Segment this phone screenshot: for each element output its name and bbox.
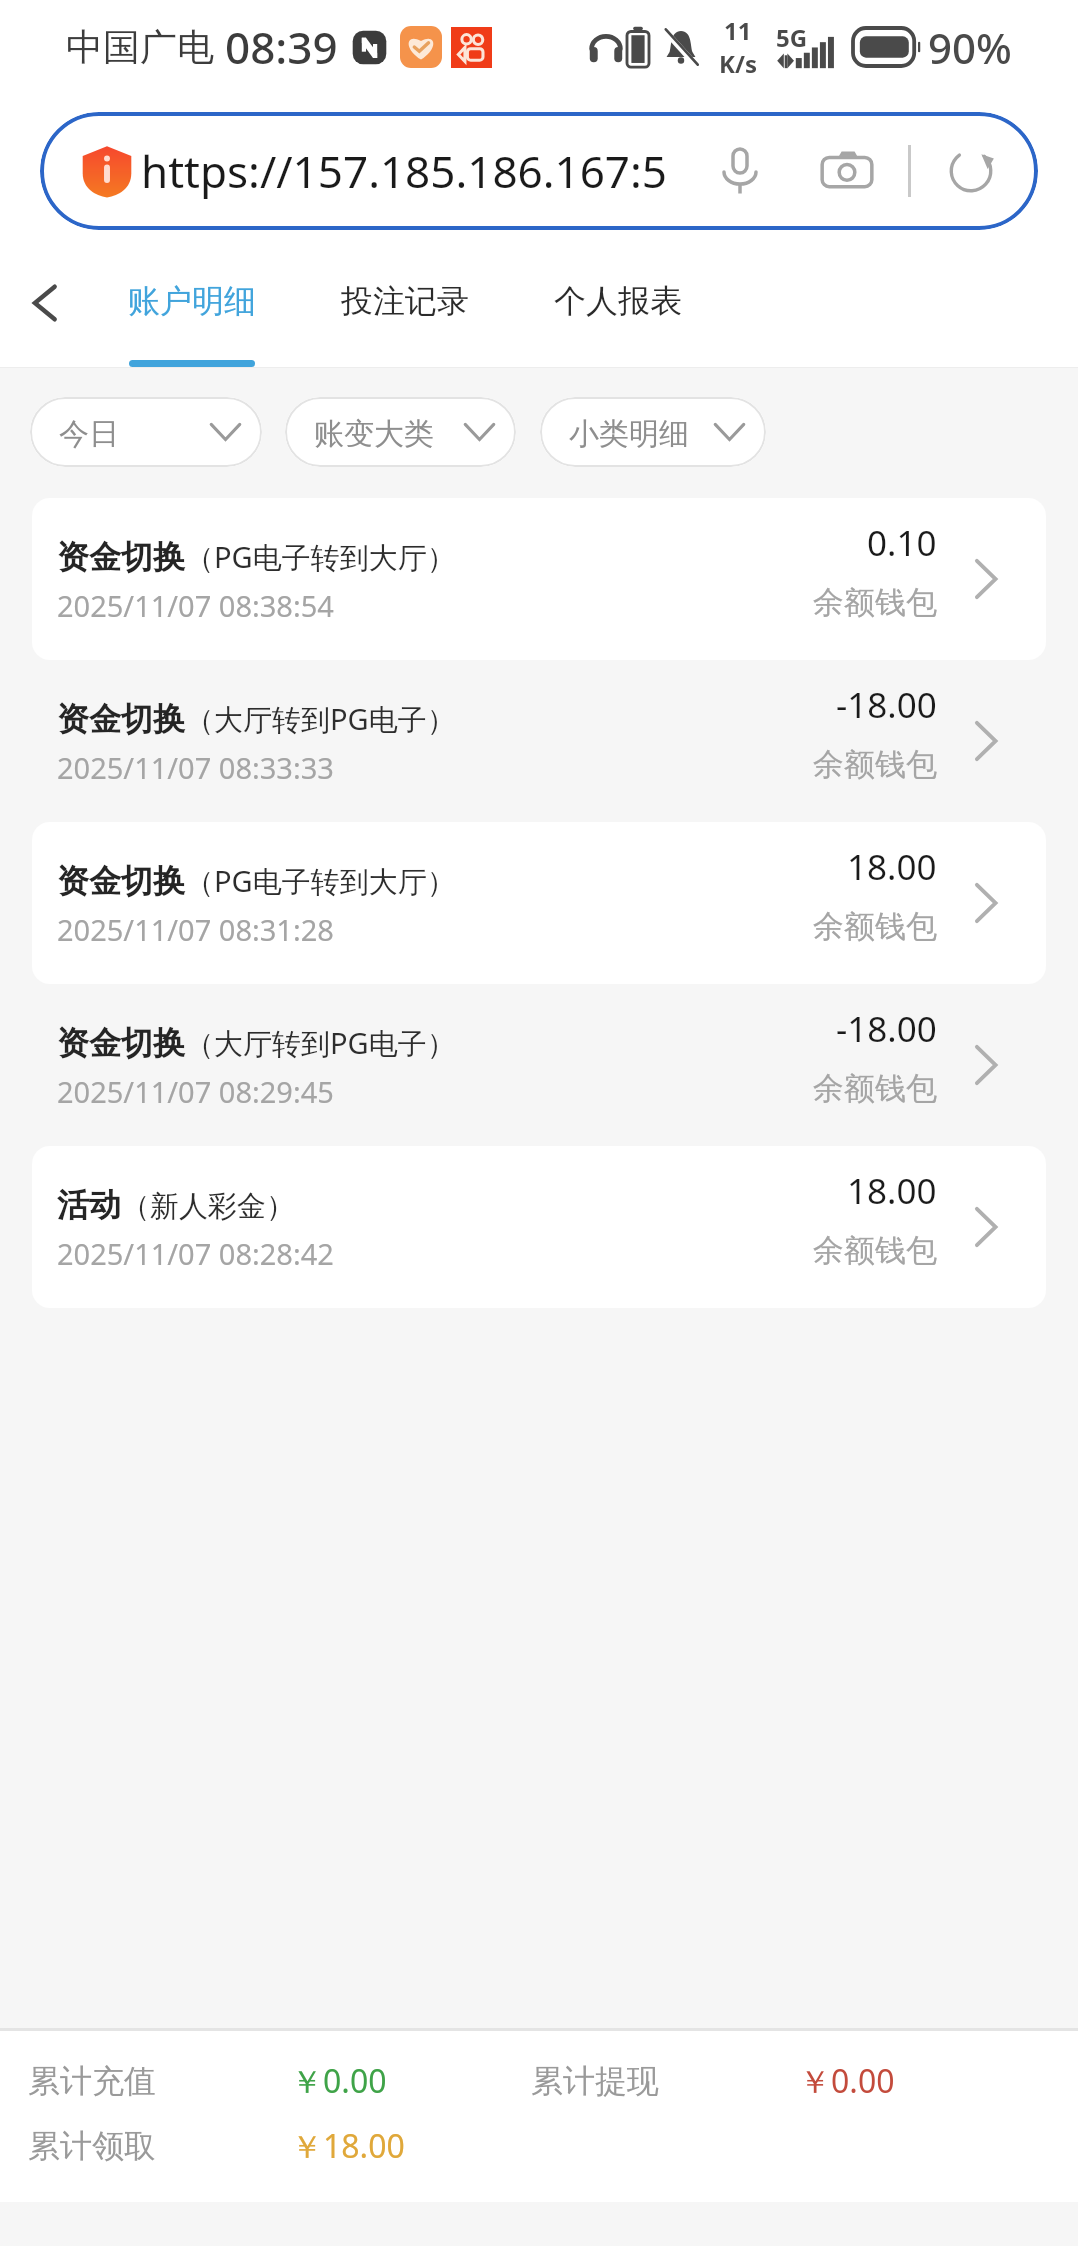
staticText: 余额钱包: [813, 1231, 937, 1270]
staticText: ￥0.00: [291, 2059, 387, 2103]
staticText: 2025/11/07 08:28:42: [57, 1234, 334, 1273]
button[interactable]: Voice search: [709, 140, 771, 202]
staticText: 2025/11/07 08:29:45: [57, 1072, 334, 1111]
staticText: 累计领取: [28, 2126, 156, 2166]
staticText: 资金切换: [57, 699, 185, 739]
button[interactable]: https://157.185.186.167:5: [40, 112, 1038, 230]
staticText: -18.00: [836, 1005, 937, 1053]
button[interactable]: 今日: [30, 397, 262, 467]
staticText: 余额钱包: [813, 1069, 937, 1108]
button[interactable]: 账户明细: [128, 248, 256, 367]
staticText: 2025/11/07 08:33:33: [57, 748, 334, 787]
staticText: （PG电子转到大厅）: [185, 861, 456, 901]
staticText: 账变大类: [314, 415, 434, 453]
staticText: 累计提现: [531, 2061, 659, 2101]
staticText: 5G: [776, 21, 808, 54]
button[interactable]: 资金切换: [32, 660, 1046, 822]
staticText: 中国广电: [66, 24, 214, 71]
button[interactable]: 活动: [32, 1146, 1046, 1308]
staticText: K/s: [719, 47, 757, 80]
staticText: 18.00: [847, 1167, 937, 1215]
staticText: 资金切换: [57, 537, 185, 577]
staticText: 0.10: [867, 519, 937, 567]
staticText: 余额钱包: [813, 745, 937, 784]
staticText: 活动: [57, 1185, 121, 1225]
button[interactable]: 资金切换: [32, 822, 1046, 984]
staticText: （PG电子转到大厅）: [185, 537, 456, 577]
staticText: ￥18.00: [291, 2124, 405, 2168]
staticText: 11: [724, 14, 752, 47]
button[interactable]: 资金切换: [32, 498, 1046, 660]
staticText: 08:39: [225, 17, 338, 77]
staticText: 投注记录: [341, 281, 469, 321]
staticText: 个人报表: [554, 281, 682, 321]
staticText: -18.00: [836, 681, 937, 729]
button[interactable]: 账变大类: [285, 397, 516, 467]
button[interactable]: Camera search: [816, 140, 878, 202]
button[interactable]: 小类明细: [540, 397, 766, 467]
staticText: 今日: [59, 415, 119, 453]
staticText: 余额钱包: [813, 583, 937, 622]
staticText: 18.00: [847, 843, 937, 891]
staticText: （新人彩金）: [121, 1188, 295, 1225]
staticText: 2025/11/07 08:38:54: [57, 586, 334, 625]
button[interactable]: 投注记录: [341, 248, 469, 367]
staticText: 小类明细: [569, 415, 689, 453]
staticText: https://157.185.186.167:5: [141, 141, 667, 201]
staticText: 账户明细: [128, 281, 256, 321]
staticText: 2025/11/07 08:31:28: [57, 910, 334, 949]
button[interactable]: 个人报表: [554, 248, 682, 367]
button[interactable]: Reload: [940, 140, 1002, 202]
staticText: 资金切换: [57, 1023, 185, 1063]
staticText: 余额钱包: [813, 907, 937, 946]
staticText: 累计充值: [28, 2061, 156, 2101]
staticText: （大厅转到PG电子）: [185, 1023, 456, 1063]
button[interactable]: Back: [0, 248, 109, 367]
button[interactable]: 资金切换: [32, 984, 1046, 1146]
staticText: ￥0.00: [799, 2059, 895, 2103]
staticText: （大厅转到PG电子）: [185, 699, 456, 739]
staticText: 资金切换: [57, 861, 185, 901]
staticText: 90%: [928, 19, 1012, 76]
